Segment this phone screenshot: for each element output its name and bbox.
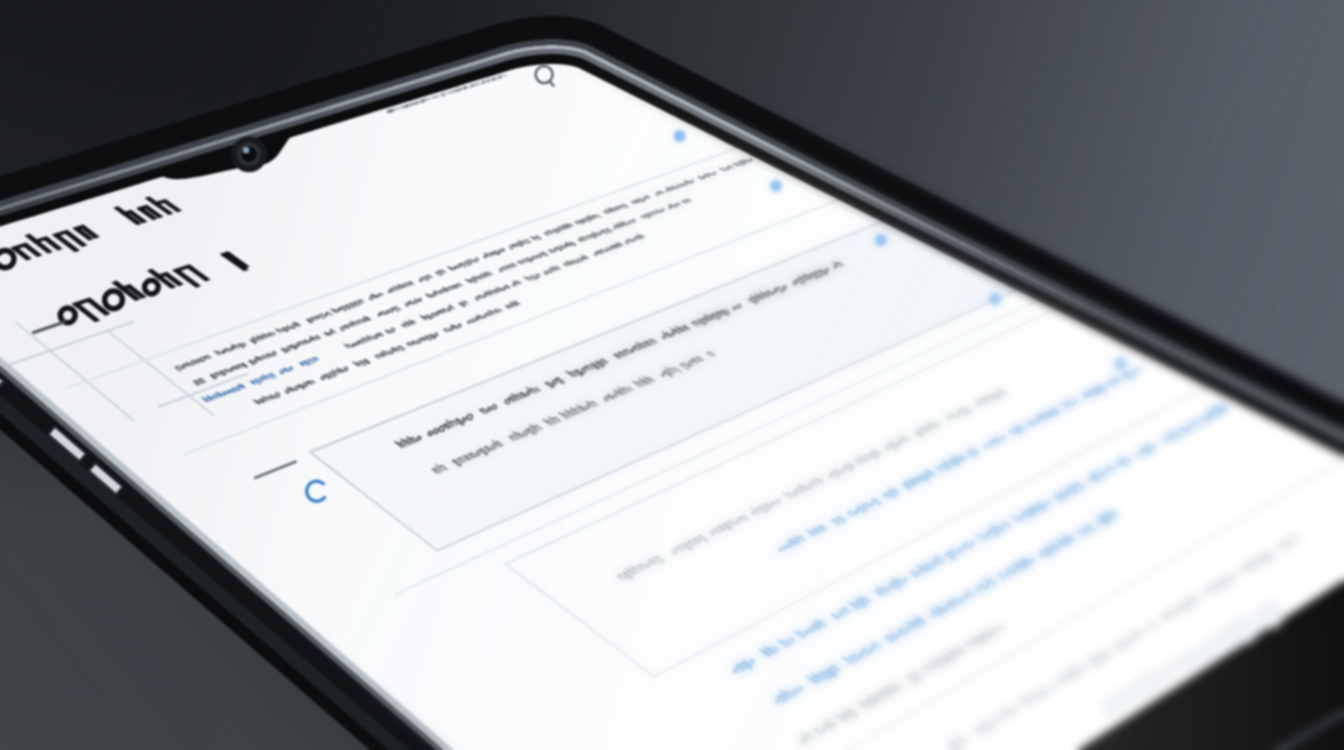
button[interactable]: Article summary row [0, 115, 796, 447]
button[interactable]: Related links row [221, 270, 1096, 691]
button[interactable]: Details card [126, 216, 997, 608]
button[interactable]: Search [470, 47, 612, 102]
button[interactable]: Featured card [40, 167, 892, 523]
button[interactable]: More stories card [318, 322, 1275, 750]
